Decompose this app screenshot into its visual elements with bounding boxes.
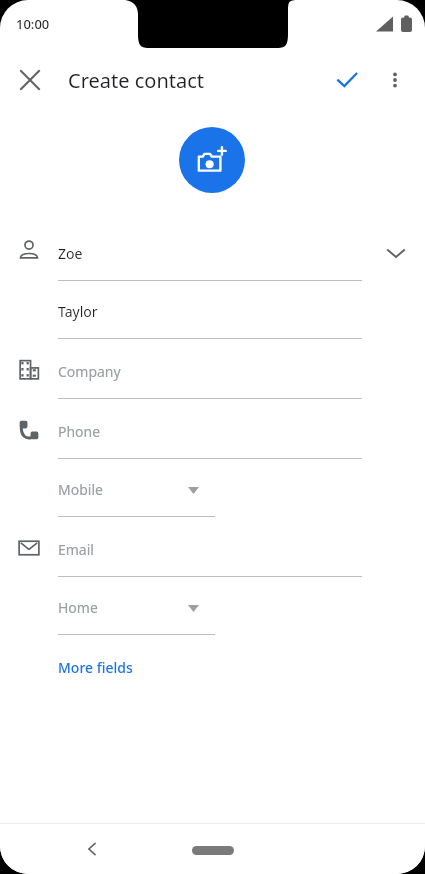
button[interactable]: More options bbox=[371, 56, 419, 104]
button[interactable]: Home bbox=[187, 838, 239, 862]
button[interactable]: Taylor bbox=[58, 298, 362, 339]
staticText: Company bbox=[58, 362, 121, 381]
button[interactable]: Phone bbox=[58, 418, 362, 459]
staticText: Taylor bbox=[58, 302, 98, 321]
button[interactable]: Save contact bbox=[323, 56, 371, 104]
button[interactable]: Add photo bbox=[179, 127, 245, 193]
button[interactable]: More fields bbox=[48, 650, 143, 684]
button[interactable]: Back bbox=[70, 827, 114, 871]
button[interactable]: Home bbox=[58, 594, 215, 635]
staticText: Email bbox=[58, 540, 94, 559]
staticText: Home bbox=[58, 598, 98, 617]
button[interactable]: Company bbox=[58, 358, 362, 399]
staticText: Phone bbox=[58, 422, 101, 441]
button[interactable]: Close bbox=[6, 56, 54, 104]
staticText: 10:00 bbox=[16, 15, 50, 33]
button[interactable]: Zoe bbox=[58, 240, 362, 281]
button[interactable]: Expand name fields bbox=[374, 231, 418, 275]
button[interactable]: Email bbox=[58, 536, 362, 577]
staticText: Create contact bbox=[68, 67, 323, 94]
button[interactable]: Mobile bbox=[58, 476, 215, 517]
staticText: Zoe bbox=[58, 244, 83, 263]
staticText: Mobile bbox=[58, 480, 103, 499]
staticText: More fields bbox=[58, 658, 133, 677]
